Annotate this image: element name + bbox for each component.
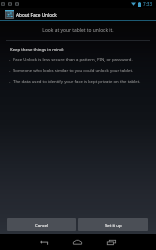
- staticText: -: [9, 78, 11, 84]
- staticText: Keep these things in mind:: [10, 46, 64, 52]
- button[interactable]: Recents: [103, 234, 120, 250]
- staticText: 7:33: [143, 1, 153, 7]
- staticText: Set it up: [105, 222, 122, 228]
- button[interactable]: About Face Unlock: [0, 8, 156, 20]
- button[interactable]: Back: [36, 234, 53, 250]
- staticText: -: [9, 67, 11, 73]
- staticText: The data used to identify your face is k…: [13, 78, 141, 84]
- staticText: About Face Unlock: [16, 12, 57, 18]
- button[interactable]: Cancel: [7, 218, 76, 231]
- staticText: Someone who looks similar to you could u…: [13, 67, 134, 73]
- staticText: -: [9, 56, 11, 62]
- staticText: Face Unlock is less secure than a patter…: [13, 56, 133, 62]
- staticText: Cancel: [35, 222, 49, 228]
- staticText: Look at your tablet to unlock it.: [0, 27, 156, 34]
- button[interactable]: Set it up: [78, 218, 148, 231]
- button[interactable]: Home: [69, 234, 86, 250]
